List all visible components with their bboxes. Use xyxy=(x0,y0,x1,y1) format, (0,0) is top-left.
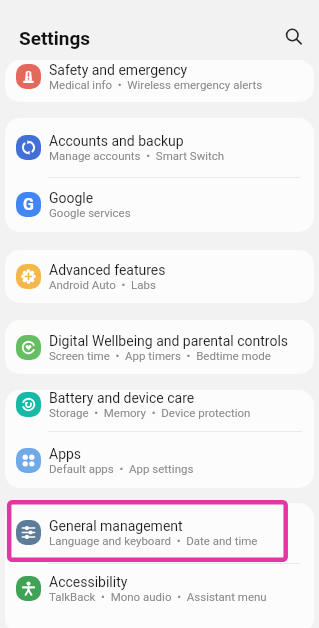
button[interactable]: G xyxy=(5,179,314,229)
staticText: Battery and device care xyxy=(49,390,195,406)
button[interactable]: Apps xyxy=(5,435,314,485)
staticText: Accounts and backup xyxy=(49,133,184,149)
staticText: General management xyxy=(49,518,183,534)
button[interactable] xyxy=(284,27,304,47)
staticText: Storage • Memory • Device protection xyxy=(49,406,251,419)
button[interactable]: Safety and emergency xyxy=(5,60,314,97)
staticText: TalkBack • Mono audio • Assistant menu xyxy=(49,590,267,603)
button[interactable]: General management xyxy=(5,507,314,557)
staticText: Google services xyxy=(49,206,131,219)
staticText: Settings xyxy=(19,27,91,49)
button[interactable]: Advanced features xyxy=(5,251,314,301)
staticText: Android Auto • Labs xyxy=(49,278,156,291)
staticText: Medical info • Wireless emergency alerts xyxy=(49,78,263,91)
staticText: Safety and emergency xyxy=(49,62,188,78)
staticText: Screen time • App timers • Bedtime mode xyxy=(49,349,271,362)
staticText: Manage accounts • Smart Switch xyxy=(49,149,225,162)
staticText: Digital Wellbeing and parental controls xyxy=(49,333,289,349)
button[interactable]: Battery and device care xyxy=(5,390,314,429)
staticText: Default apps • App settings xyxy=(49,462,194,475)
staticText: G xyxy=(23,195,34,214)
staticText: Language and keyboard • Date and time xyxy=(49,534,258,547)
button[interactable]: Digital Wellbeing and parental controls xyxy=(5,322,314,372)
button[interactable]: Accessibility xyxy=(5,563,314,613)
staticText: Apps xyxy=(49,446,82,462)
staticText: Advanced features xyxy=(49,262,166,278)
staticText: Accessibility xyxy=(49,574,128,590)
button[interactable]: Accounts and backup xyxy=(5,122,314,172)
staticText: Google xyxy=(49,190,94,206)
